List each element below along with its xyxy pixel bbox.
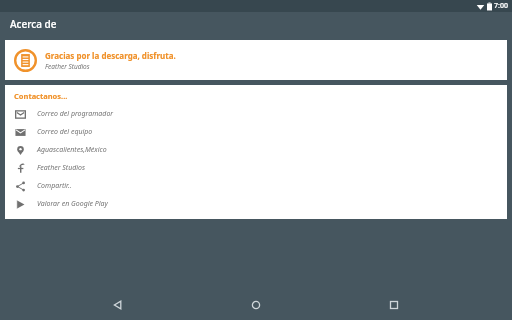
- other: Facebook: [15, 163, 26, 174]
- button[interactable]: Back: [98, 290, 138, 320]
- other: Valorar en Google Play: [15, 199, 26, 210]
- other: Correo del programador: [15, 109, 26, 120]
- staticText: Correo del equipo: [37, 127, 93, 137]
- staticText: 7:00: [494, 1, 508, 11]
- staticText: Acerca de: [10, 17, 57, 31]
- button[interactable]: Recents: [374, 290, 414, 320]
- button[interactable]: Valorar en Google Play: [5, 195, 507, 213]
- staticText: Gracias por la descarga, disfruta.: [45, 50, 176, 61]
- other: Ubicación: [15, 145, 26, 156]
- staticText: Contactanos...: [14, 91, 68, 101]
- other: Compartir: [15, 181, 26, 192]
- staticText: Valorar en Google Play: [37, 199, 108, 209]
- button[interactable]: Compartir: [5, 177, 507, 195]
- other: Correo del equipo: [15, 127, 26, 138]
- button[interactable]: Ubicación: [5, 141, 507, 159]
- staticText: Correo del programador: [37, 109, 114, 119]
- staticText: Compartir..: [37, 181, 72, 191]
- staticText: Feather Studios: [45, 62, 90, 71]
- button[interactable]: Correo del equipo: [5, 123, 507, 141]
- button[interactable]: Home: [236, 290, 276, 320]
- staticText: Aguascalientes,México: [37, 145, 107, 155]
- button[interactable]: Facebook: [5, 159, 507, 177]
- staticText: Feather Studios: [37, 163, 86, 173]
- button[interactable]: Gracias por la descarga, disfruta.: [5, 40, 507, 80]
- button[interactable]: Correo del programador: [5, 105, 507, 123]
